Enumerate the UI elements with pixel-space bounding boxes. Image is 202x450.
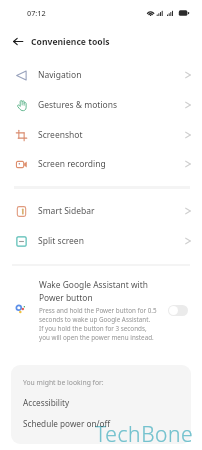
button[interactable]: Screenshot (0, 120, 202, 150)
staticText: Accessibility (23, 397, 70, 408)
staticText: You might be looking for: (23, 378, 104, 387)
button[interactable]: Navigation (0, 60, 202, 90)
button[interactable]: Wake Google Assistant toggle (168, 305, 188, 316)
staticText: Schedule power on/off (23, 418, 111, 429)
staticText: Split screen (38, 235, 84, 247)
staticText: 07:12 (27, 8, 46, 18)
button[interactable]: Accessibility (11, 392, 191, 413)
button[interactable]: Screen recording (0, 149, 202, 179)
staticText: Wake Google Assistant with Power button (39, 279, 159, 303)
staticText: TechBone (95, 420, 194, 449)
button[interactable]: Gestures & motions (0, 90, 202, 120)
button[interactable]: Back (7, 26, 29, 56)
staticText: Press and hold the Power button for 0.5 … (39, 306, 157, 342)
button[interactable]: Schedule power on/off (11, 413, 191, 434)
staticText: Convenience tools (31, 36, 110, 48)
staticText: Gestures & motions (38, 99, 118, 111)
staticText: Screen recording (38, 158, 106, 170)
button[interactable]: Split screen (0, 226, 202, 256)
button[interactable]: Wake Google Assistant with Power button (0, 268, 202, 348)
staticText: Screenshot (38, 129, 83, 141)
staticText: Navigation (38, 69, 82, 81)
staticText: Smart Sidebar (38, 205, 95, 217)
button[interactable]: Smart Sidebar (0, 196, 202, 226)
